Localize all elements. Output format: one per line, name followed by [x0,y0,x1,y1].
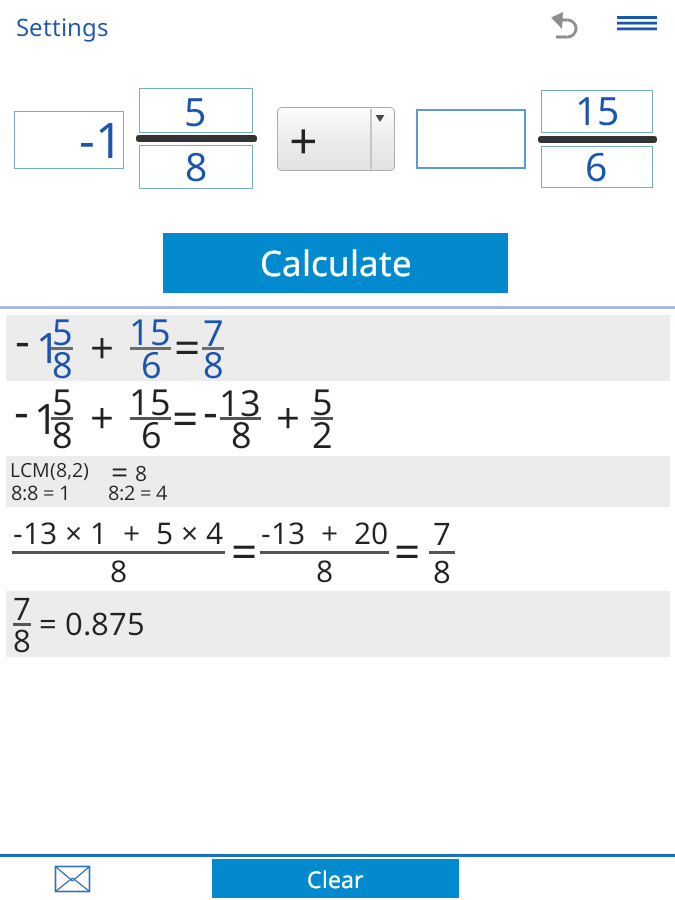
button[interactable] [541,90,653,133]
button[interactable] [617,15,657,31]
button[interactable] [139,88,253,133]
button[interactable] [549,11,579,39]
button[interactable] [14,111,124,169]
button[interactable] [416,109,526,169]
button[interactable] [163,233,508,293]
button[interactable] [55,866,90,892]
button[interactable] [17,18,108,42]
button[interactable] [541,146,653,188]
button[interactable] [277,107,395,171]
button[interactable] [212,859,459,898]
button[interactable] [139,145,253,189]
